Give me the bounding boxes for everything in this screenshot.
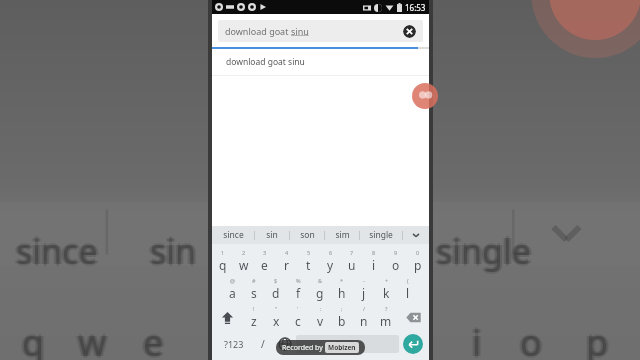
staticText: a bbox=[229, 285, 236, 301]
staticText: q bbox=[24, 318, 47, 360]
staticText: p bbox=[414, 257, 422, 273]
staticText: f bbox=[296, 285, 301, 301]
staticText: since bbox=[14, 228, 96, 274]
staticText: p bbox=[583, 318, 606, 360]
button[interactable]: Expand suggestions bbox=[403, 226, 429, 244]
button[interactable]: 6 bbox=[319, 247, 341, 275]
button[interactable]: ; bbox=[331, 303, 353, 331]
staticText: 16:53 bbox=[405, 2, 426, 13]
staticText: single bbox=[433, 228, 528, 274]
button[interactable]: ? bbox=[375, 303, 397, 331]
staticText: sin bbox=[152, 228, 199, 274]
button[interactable]: sin bbox=[255, 226, 289, 244]
staticText: q bbox=[19, 318, 42, 360]
staticText: w bbox=[78, 316, 107, 360]
staticText: since bbox=[13, 228, 95, 274]
staticText: o bbox=[518, 318, 540, 360]
button[interactable]: sim bbox=[325, 226, 359, 244]
staticText: q bbox=[20, 318, 43, 360]
staticText: z bbox=[251, 313, 257, 329]
staticText: English bbox=[336, 339, 360, 349]
staticText: ?123 bbox=[224, 338, 244, 350]
staticText: since bbox=[19, 228, 101, 274]
staticText: 6 bbox=[329, 249, 333, 256]
staticText: l bbox=[406, 285, 410, 301]
staticText: single bbox=[434, 228, 529, 274]
button[interactable]: 5 bbox=[297, 247, 319, 275]
button[interactable]: 3 bbox=[254, 247, 275, 275]
staticText: w bbox=[75, 318, 104, 360]
button[interactable]: Backspace bbox=[397, 303, 429, 331]
button[interactable]: % bbox=[287, 275, 309, 303]
staticText: download goat sinu bbox=[226, 56, 305, 68]
staticText: $ bbox=[274, 277, 278, 284]
staticText: d bbox=[272, 285, 280, 301]
button[interactable]: English bbox=[296, 335, 399, 353]
button[interactable]: 9 bbox=[385, 247, 407, 275]
staticText: # bbox=[252, 277, 256, 284]
button[interactable]: son bbox=[290, 226, 324, 244]
staticText: single bbox=[436, 230, 531, 276]
button[interactable]: / bbox=[252, 331, 274, 357]
staticText: s bbox=[251, 285, 257, 301]
staticText: since bbox=[223, 229, 244, 241]
button[interactable]: 8 bbox=[363, 247, 385, 275]
button[interactable]: " bbox=[265, 303, 287, 331]
button[interactable]: Search bbox=[403, 334, 423, 354]
button[interactable]: 0 bbox=[407, 247, 429, 275]
button[interactable]: & bbox=[309, 275, 331, 303]
staticText: single bbox=[436, 226, 531, 272]
staticText: single bbox=[439, 228, 534, 274]
button[interactable]: 4 bbox=[275, 247, 297, 275]
button[interactable]: Clear search bbox=[403, 25, 416, 38]
button[interactable]: ( bbox=[397, 275, 419, 303]
staticText: i bbox=[472, 318, 482, 360]
button[interactable]: : bbox=[309, 303, 331, 331]
staticText: x bbox=[273, 313, 280, 329]
button[interactable]: Change language bbox=[274, 331, 296, 357]
staticText: y bbox=[327, 257, 334, 273]
staticText: - bbox=[363, 277, 365, 284]
button[interactable]: @ bbox=[222, 275, 243, 303]
staticText: m bbox=[380, 313, 392, 329]
staticText: k bbox=[383, 285, 390, 301]
staticText: p bbox=[586, 320, 609, 360]
button[interactable]: download goat bbox=[218, 20, 423, 42]
staticText: u bbox=[348, 257, 356, 273]
staticText: w bbox=[81, 318, 110, 360]
button[interactable]: ?123 bbox=[215, 331, 252, 357]
staticText: e bbox=[145, 318, 166, 360]
staticText: e bbox=[143, 316, 164, 360]
button[interactable]: 2 bbox=[233, 247, 254, 275]
button[interactable]: single bbox=[360, 226, 402, 244]
button[interactable]: * bbox=[331, 275, 353, 303]
staticText: o bbox=[522, 318, 544, 360]
button[interactable]: $ bbox=[265, 275, 287, 303]
staticText: sin bbox=[150, 228, 197, 274]
button[interactable]: - bbox=[353, 275, 375, 303]
staticText: ; bbox=[341, 305, 343, 312]
staticText: since bbox=[16, 226, 98, 272]
button[interactable]: / bbox=[353, 303, 375, 331]
staticText: o bbox=[392, 257, 400, 273]
button[interactable]: + bbox=[375, 275, 397, 303]
staticText: % bbox=[296, 277, 301, 284]
staticText: 8 bbox=[372, 249, 376, 256]
staticText: single bbox=[369, 229, 393, 241]
button[interactable]: ! bbox=[243, 303, 265, 331]
button[interactable]: since bbox=[212, 226, 254, 244]
button[interactable]: # bbox=[243, 275, 265, 303]
staticText: single bbox=[436, 228, 531, 274]
button[interactable]: ' bbox=[287, 303, 309, 331]
staticText: q bbox=[22, 316, 45, 360]
staticText: e bbox=[141, 318, 162, 360]
staticText: : bbox=[320, 305, 322, 312]
staticText: + bbox=[385, 277, 389, 284]
button[interactable]: Shift bbox=[212, 303, 243, 331]
staticText: v bbox=[317, 313, 324, 329]
button[interactable]: 7 bbox=[341, 247, 363, 275]
staticText: q bbox=[219, 257, 227, 273]
button[interactable]: 1 bbox=[212, 247, 233, 275]
button[interactable]: download goat sinu bbox=[212, 49, 429, 75]
staticText: i bbox=[470, 318, 480, 360]
